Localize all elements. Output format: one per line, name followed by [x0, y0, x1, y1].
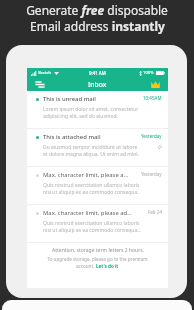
button[interactable]: Let's do it	[96, 263, 119, 269]
button[interactable]: Max. character limit, please ad...	[27, 205, 168, 242]
staticText: Inbox	[88, 80, 107, 89]
staticText: Attention, storage term letters 2 hours.	[52, 247, 144, 254]
staticText: Quis nostrud exercitation ullamco labori…	[43, 182, 139, 189]
staticText: Quis nostrud exercitation ullamco labori…	[43, 220, 140, 227]
staticText: nisi ut aliquip ex ea commodo consequa..…	[43, 227, 142, 234]
staticText: Yesterday	[141, 171, 162, 177]
staticText: et dolore magna aliqua. Ut enim ad mini.…	[43, 151, 139, 158]
button[interactable]: Max. character limit, please a...	[27, 167, 168, 204]
staticText: Lorem ipsum dolor sit amet, consectetur	[43, 106, 139, 113]
staticText: 10:45AM	[143, 95, 162, 101]
staticText: Yesterday	[141, 133, 162, 139]
button[interactable]: This is attached mail	[27, 129, 168, 166]
staticText: 100%	[143, 70, 154, 76]
staticText: Email address instantly	[30, 18, 165, 34]
staticText: Do eiusmod tempor incididunt ut labore	[43, 144, 138, 151]
button[interactable]: Open navigation menu	[33, 78, 46, 91]
staticText: adipisicing elit, sed do eiusmod.	[43, 113, 118, 120]
button[interactable]: This is unread mail	[27, 91, 168, 128]
staticText: 9:41 AM	[89, 70, 106, 76]
staticText: Feb 24	[148, 209, 162, 215]
staticText: Generate free disposable	[26, 2, 168, 18]
staticText: nisi ut aliquip ex ea commodo consequa..…	[43, 189, 139, 196]
staticText: Max. character limit, please ad...	[43, 209, 132, 217]
staticText: This is attached mail	[43, 133, 101, 141]
staticText: account.	[76, 263, 96, 269]
staticText: To upgrade storage, please go to the pre…	[47, 256, 148, 262]
staticText: Sketch	[38, 70, 52, 76]
button[interactable]: Premium account	[149, 78, 162, 91]
staticText: Max. character limit, please a...	[43, 171, 129, 179]
staticText: This is unread mail	[43, 95, 96, 103]
